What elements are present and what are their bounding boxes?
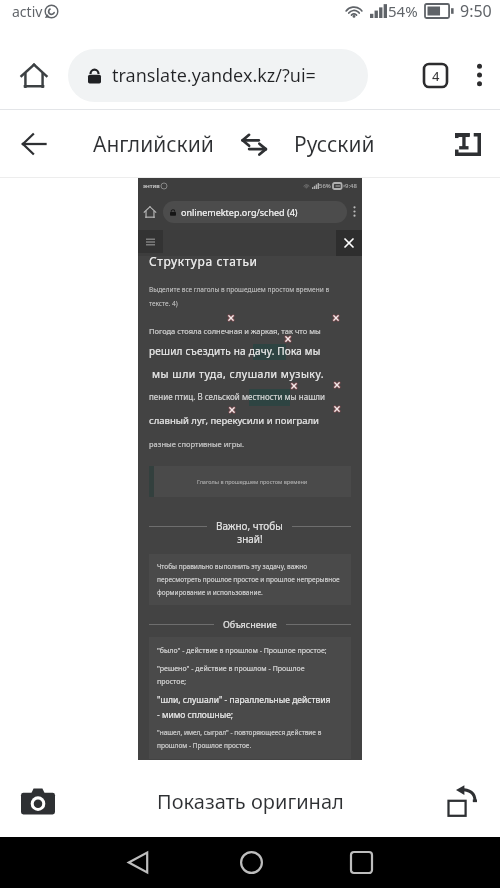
staticText: Английский [93,130,214,159]
staticText: энтив [143,182,160,190]
staticText: Показать оригинал [157,788,344,815]
staticText: activ [12,2,43,21]
button[interactable]: Rotate [424,766,500,837]
button[interactable]: Показать оригинал [76,766,424,837]
staticText: 54% [388,1,418,21]
staticText: тексте. 4) [149,299,178,308]
staticText: Важно, чтобы [216,519,283,533]
staticText: Погода стояла солнечная и жаркая, так чт… [149,326,321,336]
staticText: мы шли туда, слушали музыку. [152,367,325,381]
button[interactable]: Camera [0,766,76,837]
staticText: Структура статьи [149,253,258,269]
staticText: Чтобы правильно выполнить эту задачу, ва… [157,562,340,597]
button[interactable]: Back [114,837,162,888]
staticText: Русский [294,130,375,159]
staticText: решил съездить на дачу. Пока мы [149,344,321,358]
button[interactable]: Tabs [412,40,458,110]
staticText: "шли, слушали" - параллельные действия -… [157,694,331,720]
staticText: 4 [432,67,440,85]
button[interactable]: Swap languages [220,110,288,178]
staticText: "было" - действие в прошлом - Прошлое пр… [157,646,327,656]
staticText: Объяснение [223,618,277,630]
button[interactable]: Text recognition [436,110,500,178]
staticText: Глаголы в прошедшем простом времени [197,478,308,485]
button[interactable]: Английский [87,110,220,178]
staticText: 9:48 [345,182,357,190]
staticText: 9:50 [460,0,492,22]
staticText: пение птиц. В сельской местности мы нашл… [149,391,325,402]
staticText: "решено" - действие в прошлом - Прошлое … [157,664,305,686]
button[interactable]: More options [458,40,500,110]
staticText: знай! [149,532,351,546]
button[interactable]: Back [0,110,68,178]
staticText: разные спортивные игры. [149,439,244,449]
button[interactable]: Recents [337,837,385,888]
staticText: 56% [319,182,331,190]
staticText: славный луг, перекусили и поиграли [149,414,320,427]
button[interactable]: Русский [288,110,381,178]
button[interactable]: translate.yandex.kz/?ui= [68,49,368,102]
button[interactable]: Home [0,40,68,110]
staticText: Выделите все глаголы в прошедшем простом… [149,285,330,294]
button[interactable]: Home [227,837,275,888]
staticText: onlinemektep.org/sched (4) [181,206,298,218]
staticText: "нашел, имел, сыграл" - повторяющееся де… [157,728,322,750]
staticText: translate.yandex.kz/?ui= [112,63,316,88]
